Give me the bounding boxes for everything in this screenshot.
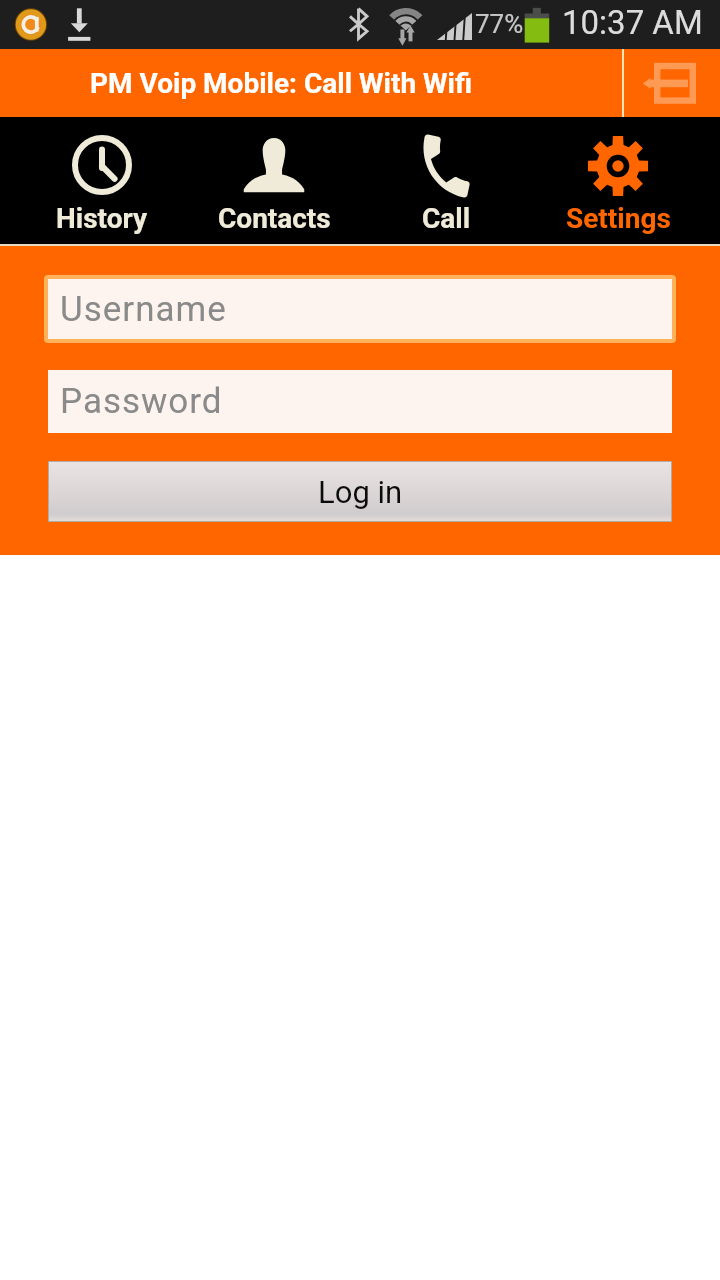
button[interactable]: Username [48, 279, 672, 339]
button[interactable]: Call [360, 117, 532, 246]
button[interactable]: Log out [624, 49, 720, 117]
staticText: History [56, 202, 148, 235]
staticText: 10:37 AM [562, 3, 703, 42]
staticText: PM Voip Mobile: Call With Wifi [90, 67, 473, 100]
staticText: Contacts [218, 202, 331, 235]
button[interactable]: Contacts [188, 117, 360, 246]
staticText: Password [60, 381, 223, 422]
button[interactable]: Log in [49, 462, 671, 521]
staticText: 77% [475, 9, 524, 39]
button[interactable]: Settings [532, 117, 704, 246]
button[interactable]: PM Voip Mobile: Call With Wifi [0, 49, 622, 117]
staticText: Settings [566, 202, 671, 235]
button[interactable]: Password [48, 370, 672, 433]
button[interactable]: History [16, 117, 188, 246]
staticText: Call [422, 202, 471, 235]
staticText: Username [60, 289, 227, 330]
staticText: Log in [318, 474, 403, 510]
